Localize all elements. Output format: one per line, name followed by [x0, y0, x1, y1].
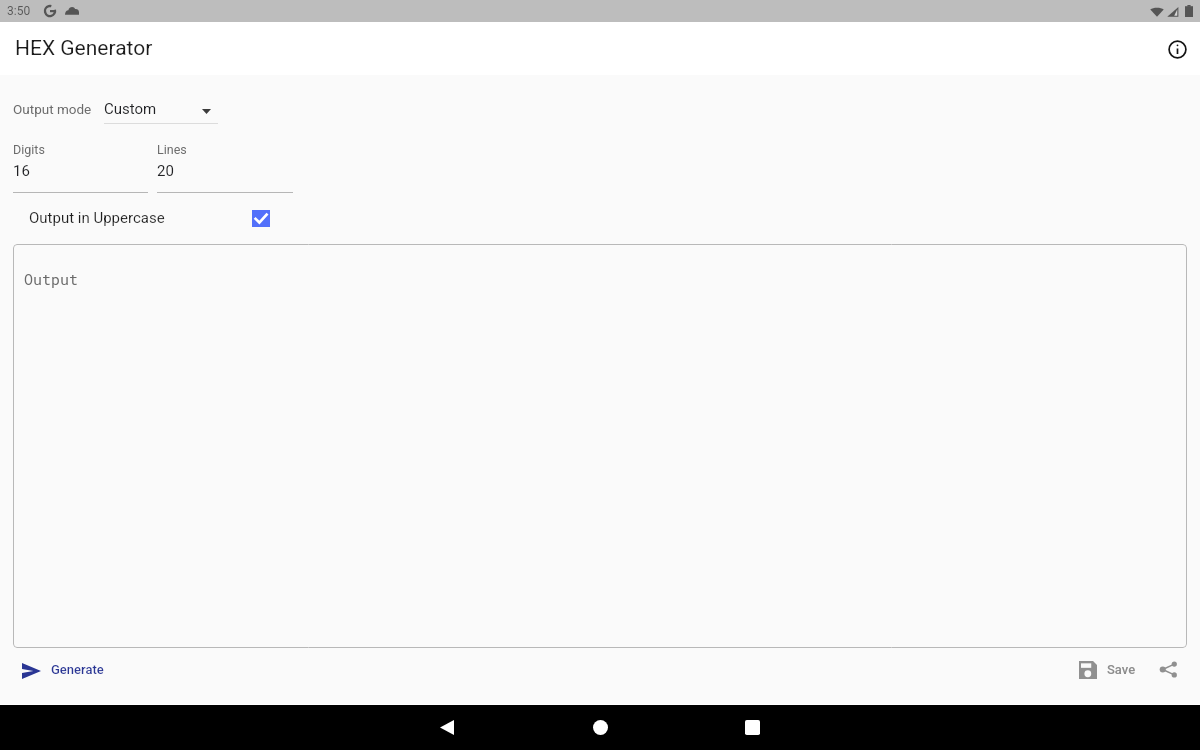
- button[interactable]: Output: [13, 244, 1187, 648]
- staticText: Custom: [104, 100, 157, 118]
- button[interactable]: Save: [1072, 650, 1143, 688]
- staticText: Output: [24, 269, 79, 289]
- staticText: Output in Uppercase: [29, 209, 165, 227]
- button[interactable]: Digits: [13, 139, 148, 199]
- button[interactable]: Output in Uppercase: [22, 201, 278, 235]
- button[interactable]: Custom: [104, 95, 218, 125]
- staticText: Digits: [13, 142, 45, 157]
- button[interactable]: Back: [423, 705, 471, 750]
- button[interactable]: Generate: [13, 650, 113, 688]
- staticText: Save: [1107, 662, 1136, 677]
- staticText: 20: [157, 162, 174, 180]
- staticText: 16: [13, 162, 30, 180]
- staticText: Output mode: [13, 101, 92, 117]
- button[interactable]: Home: [576, 705, 624, 750]
- staticText: Lines: [157, 142, 187, 157]
- button[interactable]: Lines: [157, 139, 293, 199]
- staticText: Generate: [51, 662, 104, 677]
- staticText: 3:50: [7, 4, 31, 18]
- button[interactable]: Share: [1149, 650, 1187, 688]
- button[interactable]: About: [1155, 27, 1199, 71]
- button[interactable]: Recent apps: [728, 705, 776, 750]
- staticText: HEX Generator: [15, 36, 153, 61]
